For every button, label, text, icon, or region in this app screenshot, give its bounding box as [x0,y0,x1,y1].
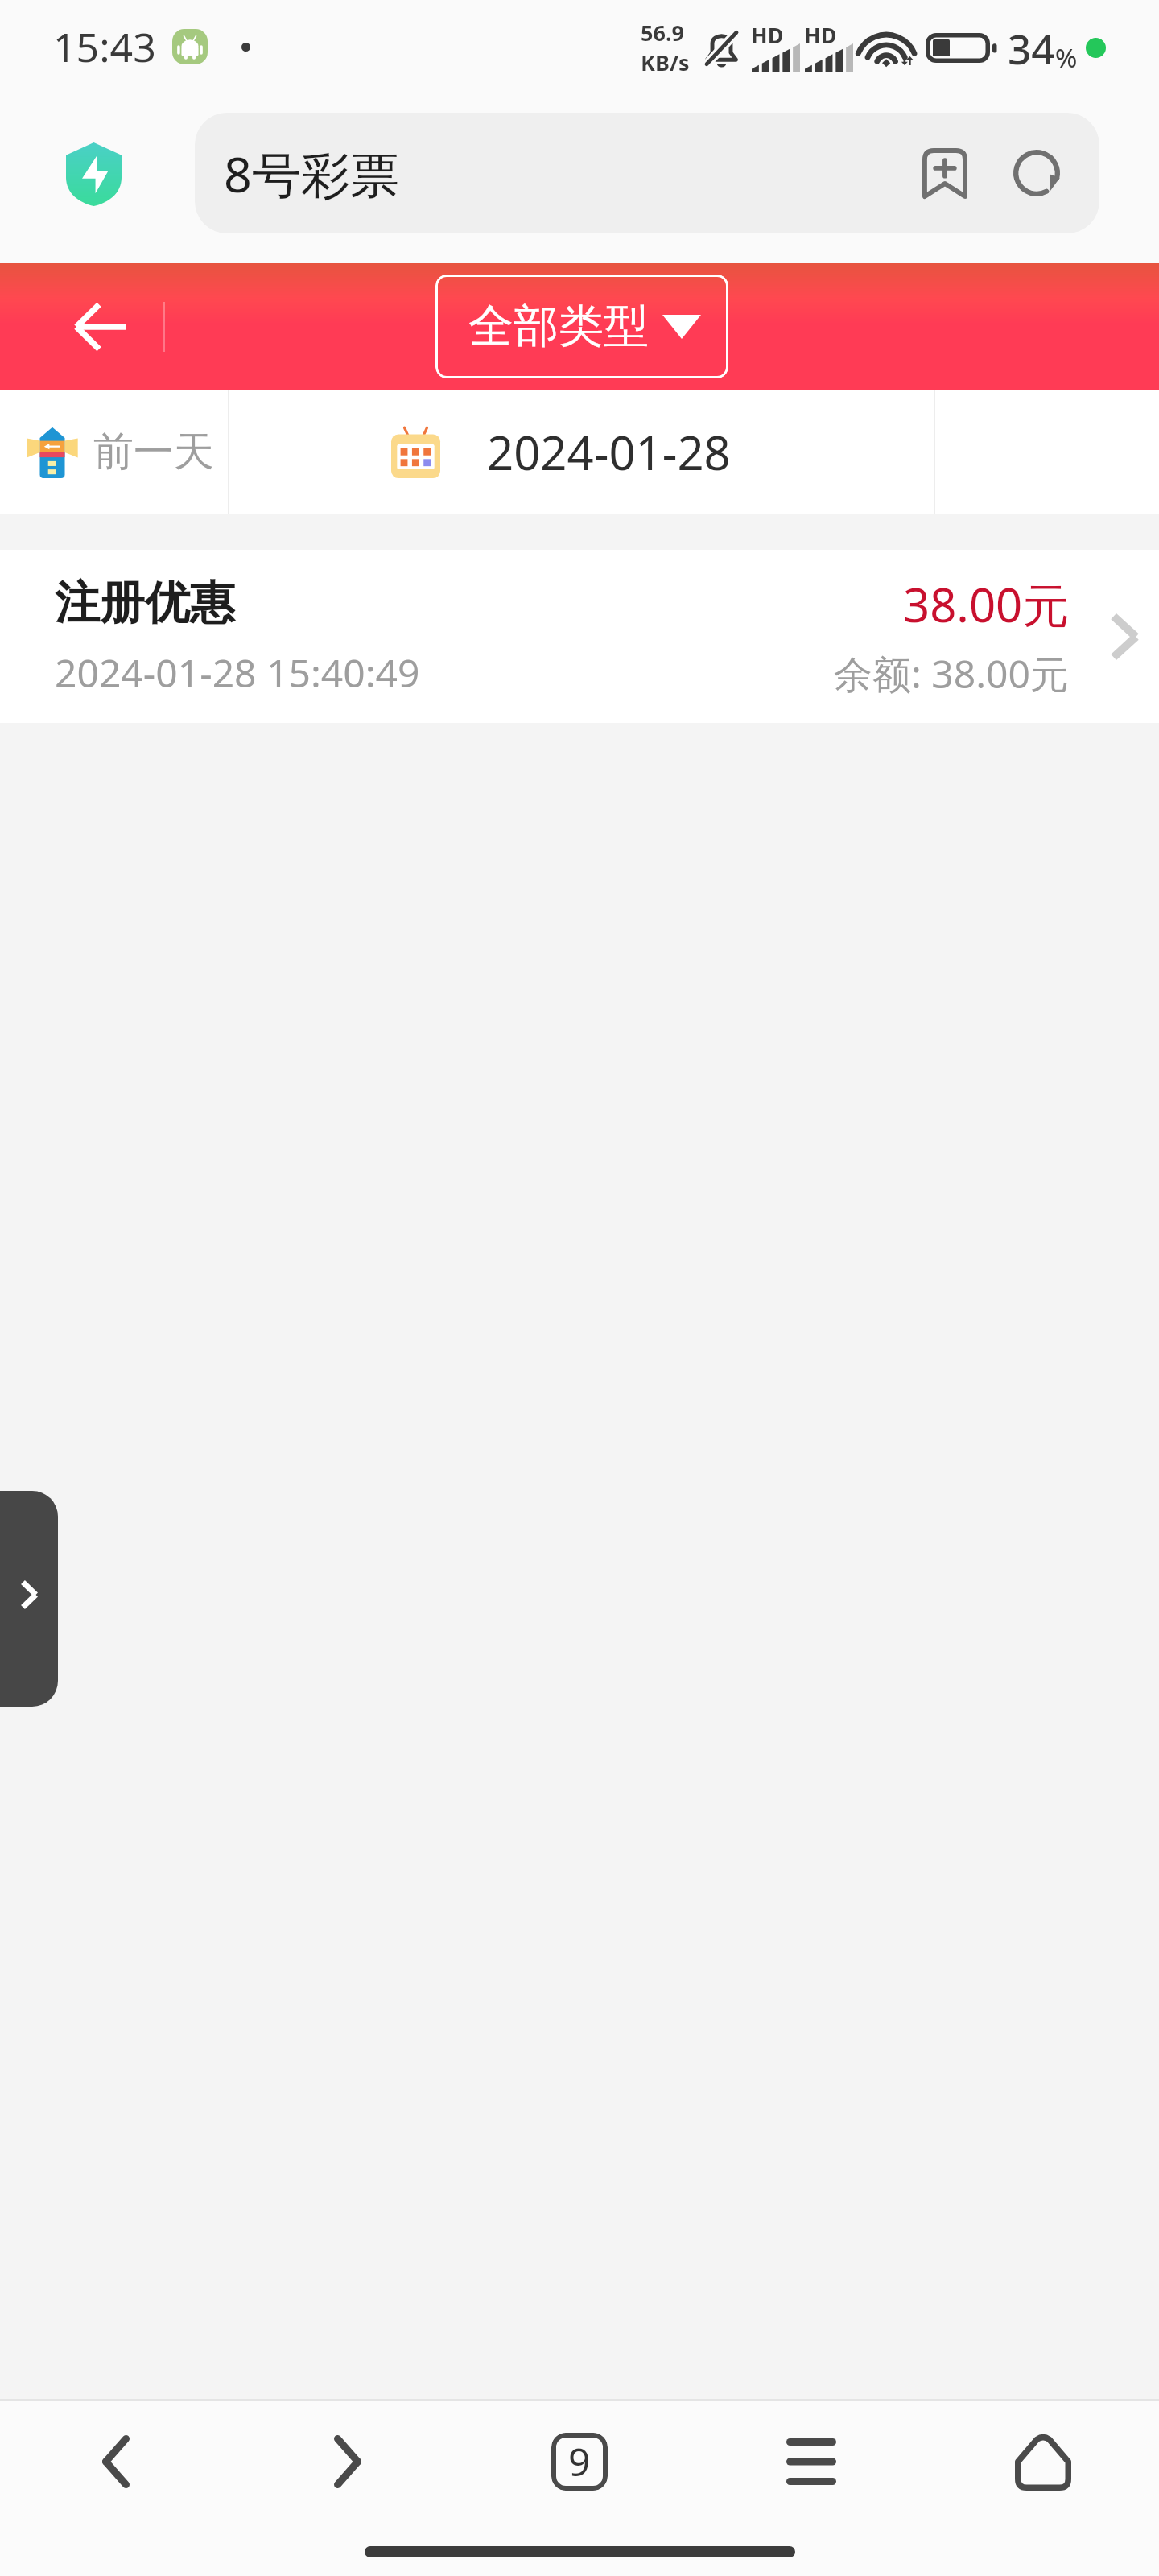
button[interactable]: 8号彩票 [195,113,1099,233]
button[interactable]: 2024-01-28 [229,390,934,514]
button[interactable]: Site security [66,142,122,206]
staticText: 56.9 [641,18,684,47]
staticText: 余额: 38.00元 [834,647,1070,700]
staticText: 38.00元 [903,572,1070,636]
button[interactable]: Home [927,2401,1159,2523]
button[interactable]: 前一天 [0,390,228,514]
button[interactable]: Tabs [464,2401,695,2523]
button[interactable]: Menu [695,2401,927,2523]
staticText: 15:43 [53,19,156,74]
staticText: 9 [568,2435,591,2487]
staticText: HD [804,20,837,50]
button[interactable]: Back [50,276,151,378]
button[interactable]: Add bookmark [903,131,987,215]
button[interactable]: Refresh [995,131,1079,215]
staticText: HD [751,20,784,50]
staticText: 注册优惠 [55,575,235,632]
staticText: % [1055,40,1078,76]
button[interactable]: Back [0,2401,232,2523]
button[interactable]: Open panel [0,1491,58,1707]
staticText: 2024-01-28 15:40:49 [55,646,420,699]
staticText: 2024-01-28 [487,420,731,484]
staticText: 34 [1008,20,1055,76]
staticText: 全部类型 [468,298,649,355]
staticText: 8号彩票 [224,140,903,207]
staticText: KB/s [641,47,690,77]
staticText: 前一天 [93,427,214,477]
button[interactable]: 注册优惠 [0,550,1159,723]
button[interactable]: 全部类型 [435,275,728,378]
button[interactable]: Forward [232,2401,464,2523]
